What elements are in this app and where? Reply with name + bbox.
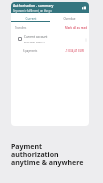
button[interactable]: Current — [11, 13, 50, 22]
staticText: Mark all as read — [65, 26, 87, 30]
staticText: 6 payments — [23, 49, 38, 53]
button[interactable]: Accounts — [81, 5, 87, 11]
staticText: Current — [25, 17, 37, 21]
staticText: Overdue — [63, 17, 76, 21]
button[interactable]: Overdue — [50, 13, 89, 22]
staticText: Ergonomic fulfilment, on the go — [13, 9, 52, 13]
staticText: Transfers — [15, 26, 27, 30]
button[interactable]: Current account — [11, 35, 89, 43]
staticText: Payment authorization anytime & anywhere — [11, 142, 84, 167]
staticText: Current account — [24, 35, 48, 39]
staticText: ES74 0081 5060 11 — [24, 40, 45, 43]
staticText: -1 034,41 EUR — [65, 49, 84, 53]
button[interactable]: Mark all as read — [65, 26, 87, 30]
button[interactable]: More options — [83, 37, 88, 42]
staticText: Authorisation - summary — [13, 3, 54, 8]
